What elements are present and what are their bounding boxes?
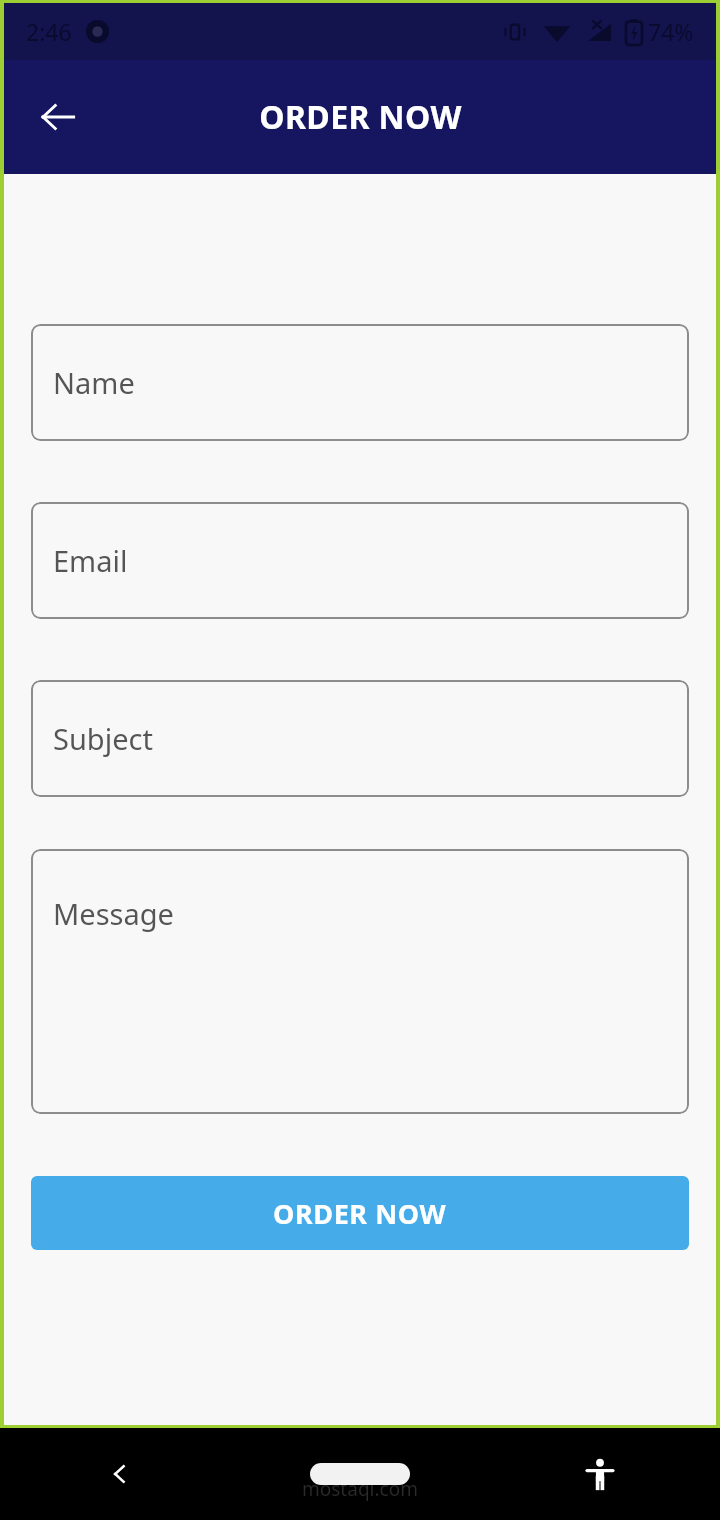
- staticText: ORDER NOW: [273, 1195, 447, 1232]
- staticText: Message: [53, 894, 174, 933]
- button[interactable]: Subject: [31, 680, 689, 797]
- staticText: 74%: [648, 16, 694, 47]
- button[interactable]: Back: [26, 85, 90, 149]
- staticText: Subject: [53, 719, 153, 758]
- button[interactable]: Home: [240, 1428, 480, 1520]
- button[interactable]: Email: [31, 502, 689, 619]
- staticText: Name: [53, 363, 135, 402]
- staticText: 2:46: [26, 16, 72, 47]
- staticText: Email: [53, 541, 128, 580]
- button[interactable]: Name: [31, 324, 689, 441]
- staticText: ORDER NOW: [259, 95, 462, 139]
- button[interactable]: Back: [0, 1428, 240, 1520]
- button[interactable]: Message: [31, 849, 689, 1114]
- button[interactable]: ORDER NOW: [31, 1176, 689, 1250]
- button[interactable]: Accessibility: [480, 1428, 720, 1520]
- staticText: mostaql.com: [302, 1476, 418, 1502]
